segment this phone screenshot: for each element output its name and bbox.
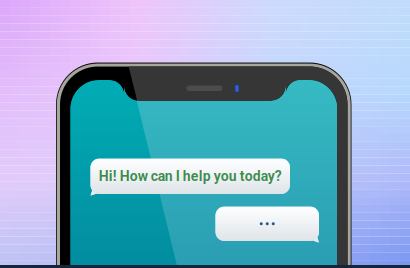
staticText: Hi! How can I help you today? (99, 168, 282, 184)
